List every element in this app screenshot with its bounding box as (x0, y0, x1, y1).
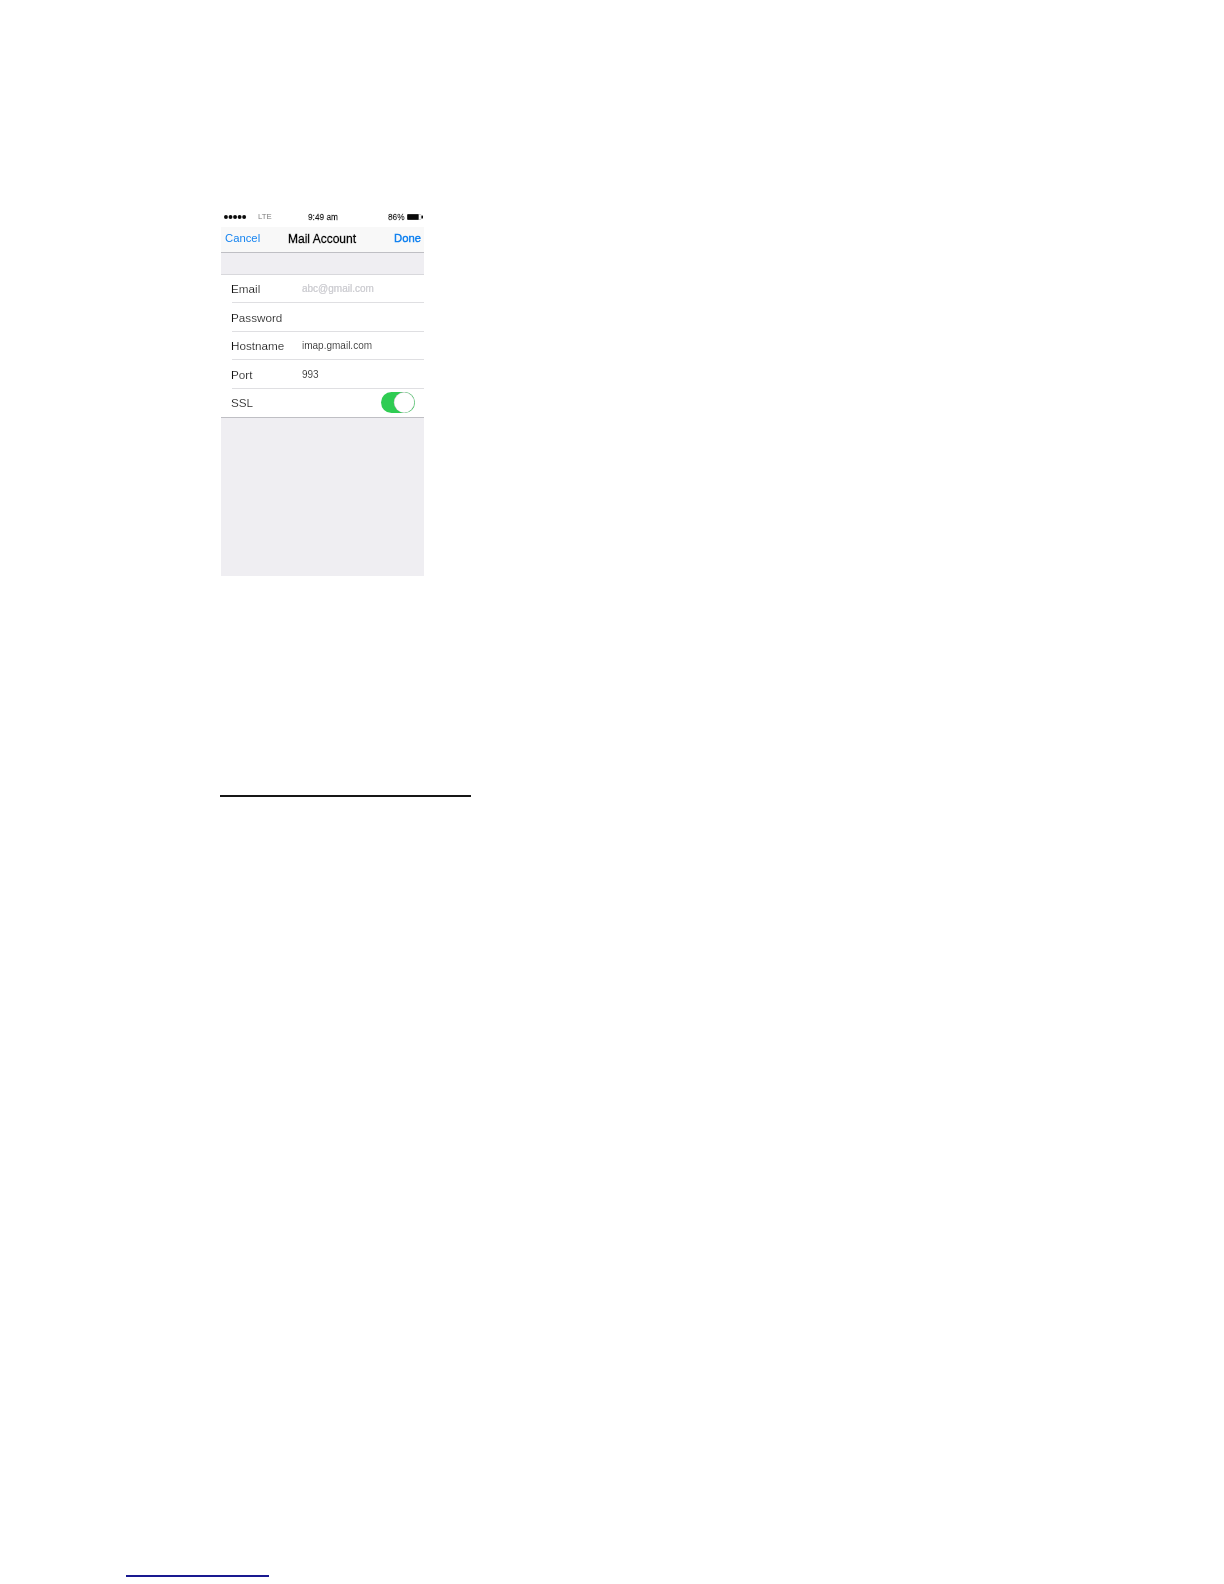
button[interactable]: Password (221, 303, 424, 332)
staticText: SSL (231, 396, 254, 409)
button[interactable]: SSL (221, 388, 424, 417)
staticText: 86% (388, 212, 405, 221)
button[interactable]: Cancel (221, 227, 267, 253)
button[interactable]: Port (221, 360, 424, 389)
staticText: abc@gmail.com (302, 283, 374, 294)
staticText: Hostname (231, 339, 285, 352)
staticText: Email (231, 282, 261, 295)
staticText: Done (394, 232, 422, 245)
button[interactable]: Hostname (221, 331, 424, 360)
button[interactable]: SSL toggle (381, 392, 415, 413)
staticText: 993 (302, 369, 319, 380)
staticText: Cancel (225, 232, 261, 245)
staticText: imap.gmail.com (302, 340, 373, 351)
staticText: Port (231, 368, 253, 381)
staticText: Password (231, 311, 283, 324)
staticText: LTE (258, 212, 272, 221)
button[interactable]: Done (386, 227, 424, 253)
button[interactable]: Email (221, 274, 424, 303)
staticText: Mail Account (288, 232, 357, 245)
staticText: 9:49 am (308, 212, 338, 221)
